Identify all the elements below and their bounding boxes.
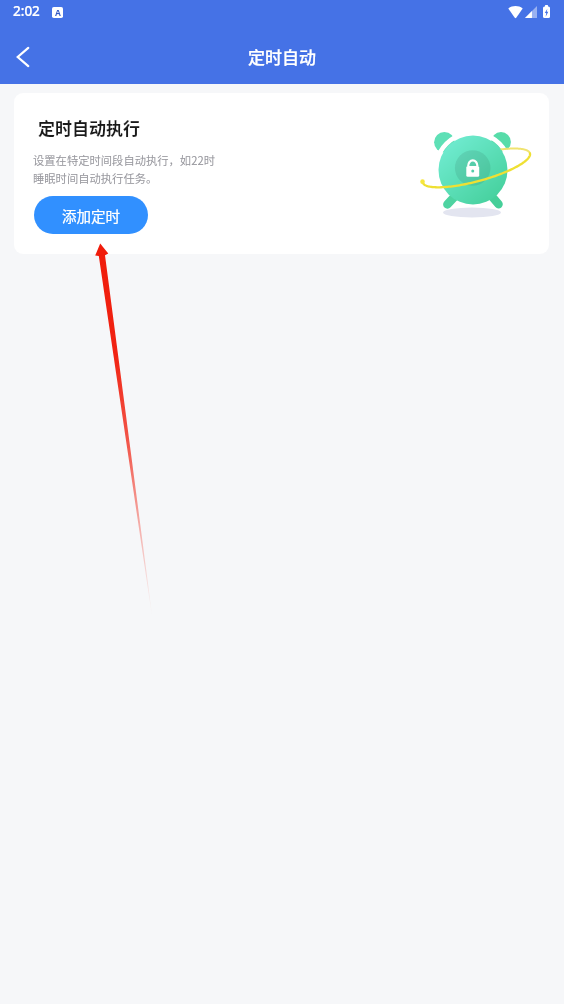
button[interactable]: 添加定时 [34, 196, 148, 234]
staticText: A [55, 7, 61, 18]
staticText: 定时自动执行 [38, 115, 140, 140]
staticText: 添加定时 [62, 205, 120, 226]
staticText: 2:02 [13, 2, 40, 20]
staticText: 定时自动 [248, 44, 316, 69]
staticText: 设置在特定时间段自动执行，如22时 睡眠时间自动执行任务。 [33, 152, 215, 187]
button[interactable]: Back [1, 35, 45, 79]
